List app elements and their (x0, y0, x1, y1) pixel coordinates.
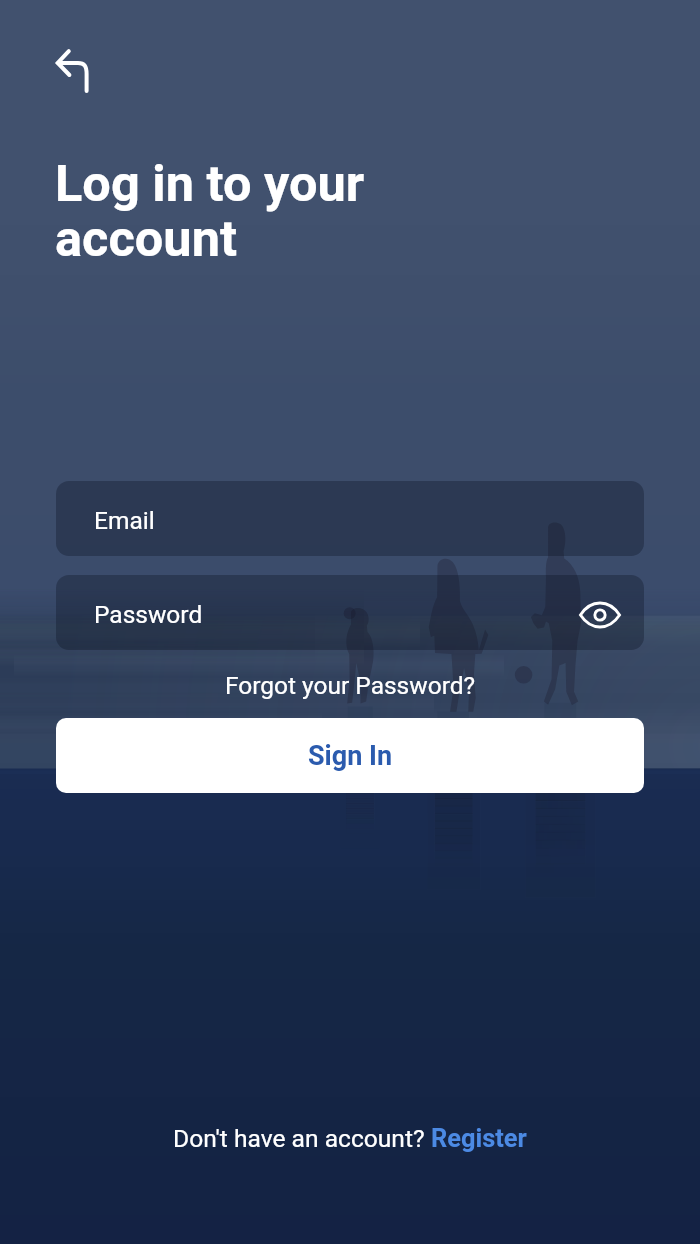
staticText: Email (94, 506, 155, 535)
staticText: Sign In (308, 740, 393, 772)
button[interactable]: Back (42, 36, 102, 96)
button[interactable]: Show password (574, 587, 626, 639)
staticText: Log in to your account (55, 154, 365, 268)
staticText: Register (431, 1123, 527, 1153)
button[interactable]: Sign In (56, 718, 644, 793)
button[interactable]: Register (431, 1123, 527, 1153)
button[interactable]: Email (56, 481, 644, 556)
button[interactable]: Password (56, 575, 644, 650)
button[interactable]: Forgot your Password? (0, 667, 700, 704)
staticText: Password (94, 600, 203, 629)
staticText: Don't have an account? (173, 1124, 431, 1153)
